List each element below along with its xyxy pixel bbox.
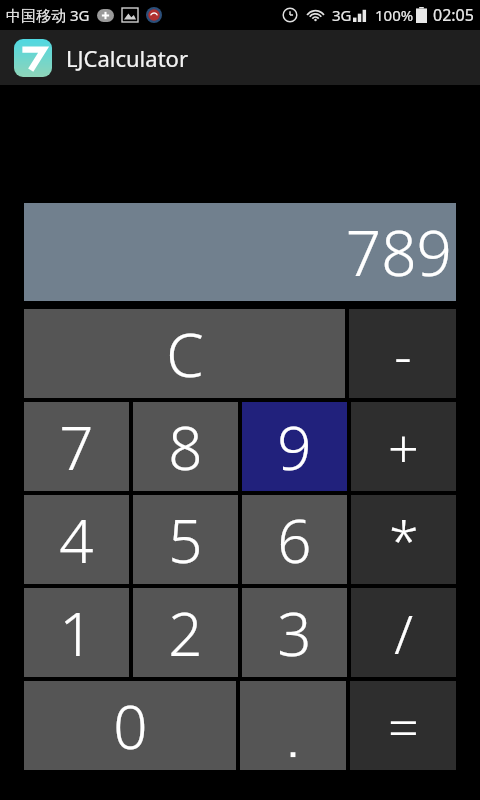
staticText: 7	[59, 406, 94, 488]
button[interactable]: C	[24, 309, 345, 398]
staticText: LJCalculator	[66, 43, 188, 73]
staticText: 100%	[375, 5, 414, 25]
button[interactable]: 3	[242, 588, 347, 677]
button[interactable]: 9	[242, 402, 347, 491]
button[interactable]: *	[351, 495, 456, 584]
staticText: /	[394, 596, 413, 670]
staticText: 9	[277, 406, 312, 488]
button[interactable]: 1	[24, 588, 129, 677]
staticText: +	[388, 410, 419, 484]
staticText: 3G	[332, 5, 352, 25]
staticText: 2	[168, 592, 203, 674]
button[interactable]: 4	[24, 495, 129, 584]
button[interactable]: 7	[24, 402, 129, 491]
staticText: =	[388, 689, 419, 763]
button[interactable]: Decimal point	[240, 681, 346, 770]
staticText: 8	[168, 406, 203, 488]
staticText: C	[166, 313, 204, 395]
staticText: 5	[168, 499, 203, 581]
staticText: 6	[277, 499, 312, 581]
staticText: 4	[59, 499, 94, 581]
button[interactable]: 6	[242, 495, 347, 584]
staticText: 3	[277, 592, 312, 674]
staticText: 0	[113, 685, 148, 767]
button[interactable]: /	[351, 588, 456, 677]
staticText: 1	[59, 592, 94, 674]
staticText: -	[394, 317, 412, 391]
button[interactable]: -	[349, 309, 456, 398]
button[interactable]: 0	[24, 681, 236, 770]
staticText: *	[389, 503, 419, 577]
staticText: 789	[345, 210, 452, 294]
button[interactable]: 2	[133, 588, 238, 677]
staticText: 02:05	[433, 4, 474, 26]
staticText: 中国移动 3G	[6, 5, 90, 25]
button[interactable]: +	[351, 402, 456, 491]
button[interactable]: 8	[133, 402, 238, 491]
button[interactable]: =	[350, 681, 456, 770]
button[interactable]: 5	[133, 495, 238, 584]
